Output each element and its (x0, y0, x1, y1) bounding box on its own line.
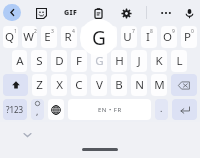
button[interactable]: GIF (60, 4, 82, 22)
button[interactable]: Voice input (180, 4, 198, 22)
staticText: W (23, 29, 34, 45)
staticText: J (137, 53, 141, 69)
button[interactable]: Q (3, 26, 18, 48)
button[interactable]: Change language (48, 99, 64, 120)
staticText: . (160, 102, 163, 114)
button[interactable]: H (111, 50, 127, 72)
button[interactable]: ?123 (3, 99, 27, 120)
staticText: ?123 (6, 104, 24, 115)
button[interactable]: Clipboard (89, 4, 107, 22)
staticText: , (36, 105, 39, 117)
button[interactable]: F (71, 50, 87, 72)
button[interactable]: E (41, 26, 57, 48)
button[interactable]: Period (155, 99, 168, 120)
staticText: C (75, 77, 83, 93)
staticText: 1 (14, 28, 17, 35)
staticText: EN • FR (98, 106, 122, 114)
staticText: M (154, 77, 165, 93)
button[interactable]: L (171, 50, 187, 72)
staticText: L (176, 53, 183, 69)
button[interactable]: Shift (3, 74, 28, 96)
staticText: B (115, 77, 123, 93)
staticText: H (115, 53, 124, 69)
button[interactable]: Back (3, 4, 21, 21)
button[interactable]: D (51, 50, 67, 72)
staticText: G (95, 53, 104, 69)
staticText: A (16, 53, 24, 69)
button[interactable]: W (22, 26, 37, 48)
button[interactable]: Backspace (171, 74, 197, 96)
staticText: K (155, 53, 163, 69)
staticText: 0 (191, 28, 194, 35)
staticText: 3 (51, 28, 54, 35)
staticText: G (92, 25, 106, 51)
staticText: O (163, 29, 172, 45)
staticText: S (36, 53, 43, 69)
button[interactable]: Comma (31, 99, 44, 120)
button[interactable]: I (141, 26, 157, 48)
button[interactable]: Hide keyboard (20, 130, 34, 140)
staticText: 8 (150, 28, 153, 35)
staticText: V (96, 77, 103, 93)
staticText: E (44, 29, 51, 45)
button[interactable]: P (181, 26, 197, 48)
staticText: 2 (34, 28, 37, 35)
button[interactable]: X (51, 74, 67, 96)
button[interactable]: Space (68, 99, 151, 120)
button[interactable]: S (31, 50, 47, 72)
button[interactable]: V (91, 74, 107, 96)
button[interactable]: O (161, 26, 177, 48)
staticText: U (123, 29, 132, 45)
button[interactable]: Stickers (32, 4, 50, 22)
staticText: 5 (91, 28, 94, 35)
button[interactable]: J (131, 50, 147, 72)
staticText: Q (5, 29, 14, 45)
staticText: P (184, 29, 191, 45)
button[interactable]: M (151, 74, 167, 96)
button[interactable]: A (12, 50, 27, 72)
button[interactable]: Y (101, 26, 117, 48)
button[interactable]: G (91, 50, 107, 72)
button[interactable]: T (81, 26, 97, 48)
button[interactable]: K (151, 50, 167, 72)
button[interactable]: R (61, 26, 77, 48)
button[interactable]: N (131, 74, 147, 96)
staticText: R (64, 29, 72, 45)
staticText: 4 (72, 28, 75, 35)
staticText: X (56, 77, 63, 93)
staticText: Y (104, 29, 111, 45)
staticText: GIF (64, 8, 78, 18)
button[interactable]: U (121, 26, 137, 48)
staticText: I (146, 29, 150, 45)
staticText: 9 (172, 28, 175, 35)
button[interactable]: B (111, 74, 127, 96)
staticText: D (55, 53, 64, 69)
staticText: F (76, 53, 82, 69)
button[interactable]: Enter (172, 99, 197, 120)
staticText: N (135, 77, 144, 93)
staticText: Z (36, 77, 43, 93)
staticText: 7 (132, 28, 135, 35)
button[interactable]: Settings (117, 4, 135, 22)
button[interactable]: Z (32, 74, 47, 96)
button[interactable]: C (71, 74, 87, 96)
button[interactable]: More options (156, 4, 176, 22)
